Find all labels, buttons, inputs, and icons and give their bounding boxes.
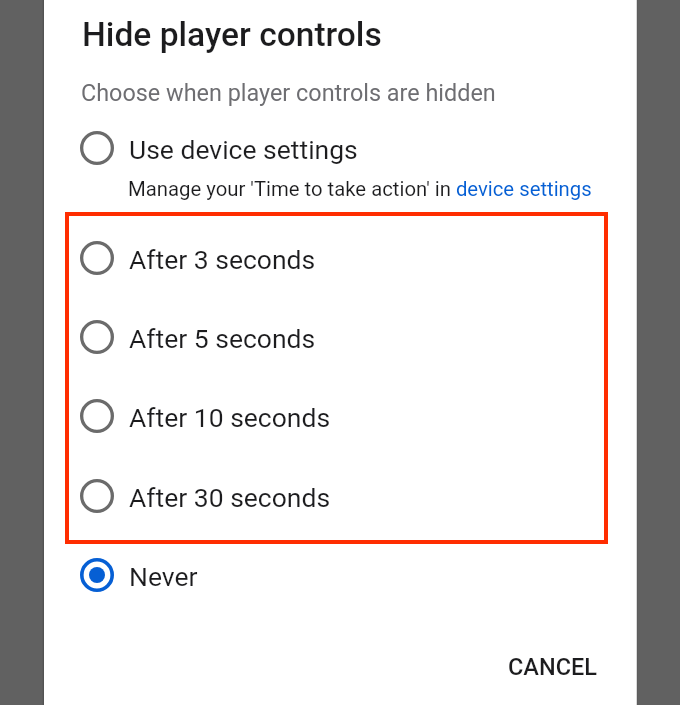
button[interactable]: After 5 seconds (44, 313, 637, 361)
staticText: After 30 seconds (129, 482, 331, 513)
staticText: Use device settings (129, 134, 358, 165)
staticText: After 5 seconds (129, 323, 316, 354)
button[interactable]: Never (44, 551, 637, 599)
staticText: Choose when player controls are hidden (81, 79, 496, 106)
staticText: CANCEL (508, 653, 598, 681)
staticText: Manage your 'Time to take action' in dev… (128, 177, 592, 201)
button[interactable]: Manage your 'Time to take action' in dev… (128, 175, 592, 203)
button[interactable]: Use device settings (44, 124, 637, 172)
button[interactable]: After 10 seconds (44, 392, 637, 440)
staticText: Never (129, 561, 198, 592)
button[interactable]: After 3 seconds (44, 234, 637, 282)
button[interactable]: After 30 seconds (44, 472, 637, 520)
button[interactable]: CANCEL (488, 642, 618, 692)
staticText: Hide player controls (82, 15, 382, 54)
staticText: After 3 seconds (129, 244, 316, 275)
staticText: After 10 seconds (129, 402, 331, 433)
